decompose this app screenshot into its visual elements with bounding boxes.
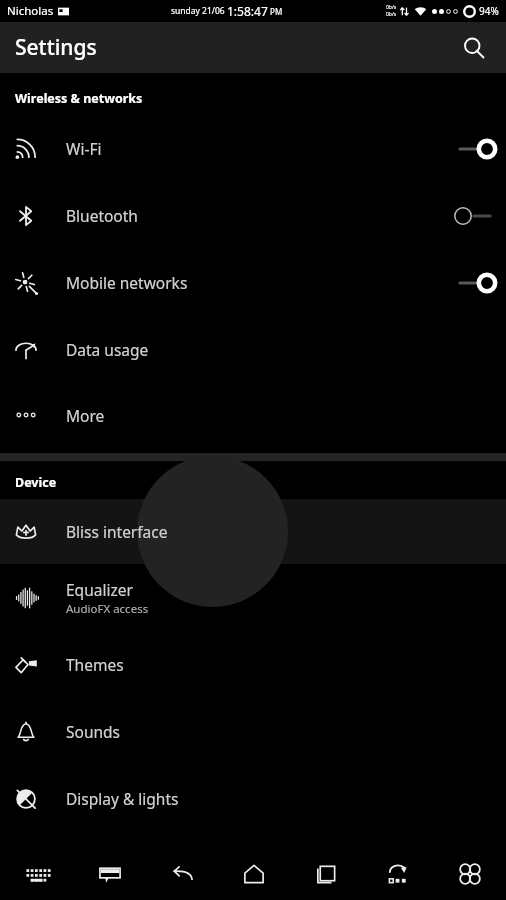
button[interactable]: Search <box>453 27 495 69</box>
staticText: Sounds <box>66 721 121 742</box>
staticText: Themes <box>66 654 124 675</box>
button[interactable]: Apps <box>434 848 506 900</box>
staticText: Wi-Fi <box>66 138 102 159</box>
button[interactable]: Recents <box>290 848 362 900</box>
button[interactable]: More <box>0 382 506 448</box>
staticText: Equalizer <box>66 579 133 600</box>
staticText: 0b/s <box>386 11 397 18</box>
button[interactable]: Keyboard <box>0 848 73 900</box>
button[interactable]: Messages <box>73 848 146 900</box>
staticText: sunday 21/06 <box>171 5 227 17</box>
button[interactable]: Back <box>146 848 218 900</box>
staticText: Settings <box>15 33 97 62</box>
button[interactable]: Bluetooth <box>0 182 506 249</box>
staticText: Display & lights <box>66 788 179 809</box>
button[interactable]: Display & lights <box>0 765 506 832</box>
button[interactable]: Data usage <box>0 316 506 382</box>
staticText: Bliss interface <box>66 521 168 542</box>
staticText: PM <box>268 6 283 17</box>
staticText: Device <box>15 474 57 491</box>
staticText: 94% <box>479 4 499 18</box>
staticText: Wireless & networks <box>15 90 143 107</box>
button[interactable]: Wi-Fi <box>0 115 506 182</box>
staticText: Mobile networks <box>66 272 188 293</box>
staticText: Data usage <box>66 339 149 360</box>
button[interactable]: Bliss interface <box>0 499 506 564</box>
staticText: More <box>66 405 105 426</box>
staticText: Bluetooth <box>66 205 138 226</box>
button[interactable]: Themes <box>0 631 506 698</box>
button[interactable]: Mobile networks <box>0 249 506 316</box>
staticText: 0b/s <box>386 4 397 11</box>
button[interactable]: Rotate <box>362 848 434 900</box>
button[interactable]: Sounds <box>0 698 506 765</box>
staticText: 1:58:47 <box>227 3 268 19</box>
button[interactable]: Home <box>218 848 290 900</box>
staticText: AudioFX access <box>66 601 149 617</box>
button[interactable]: Equalizer <box>0 564 506 631</box>
staticText: Nicholas <box>7 3 54 19</box>
